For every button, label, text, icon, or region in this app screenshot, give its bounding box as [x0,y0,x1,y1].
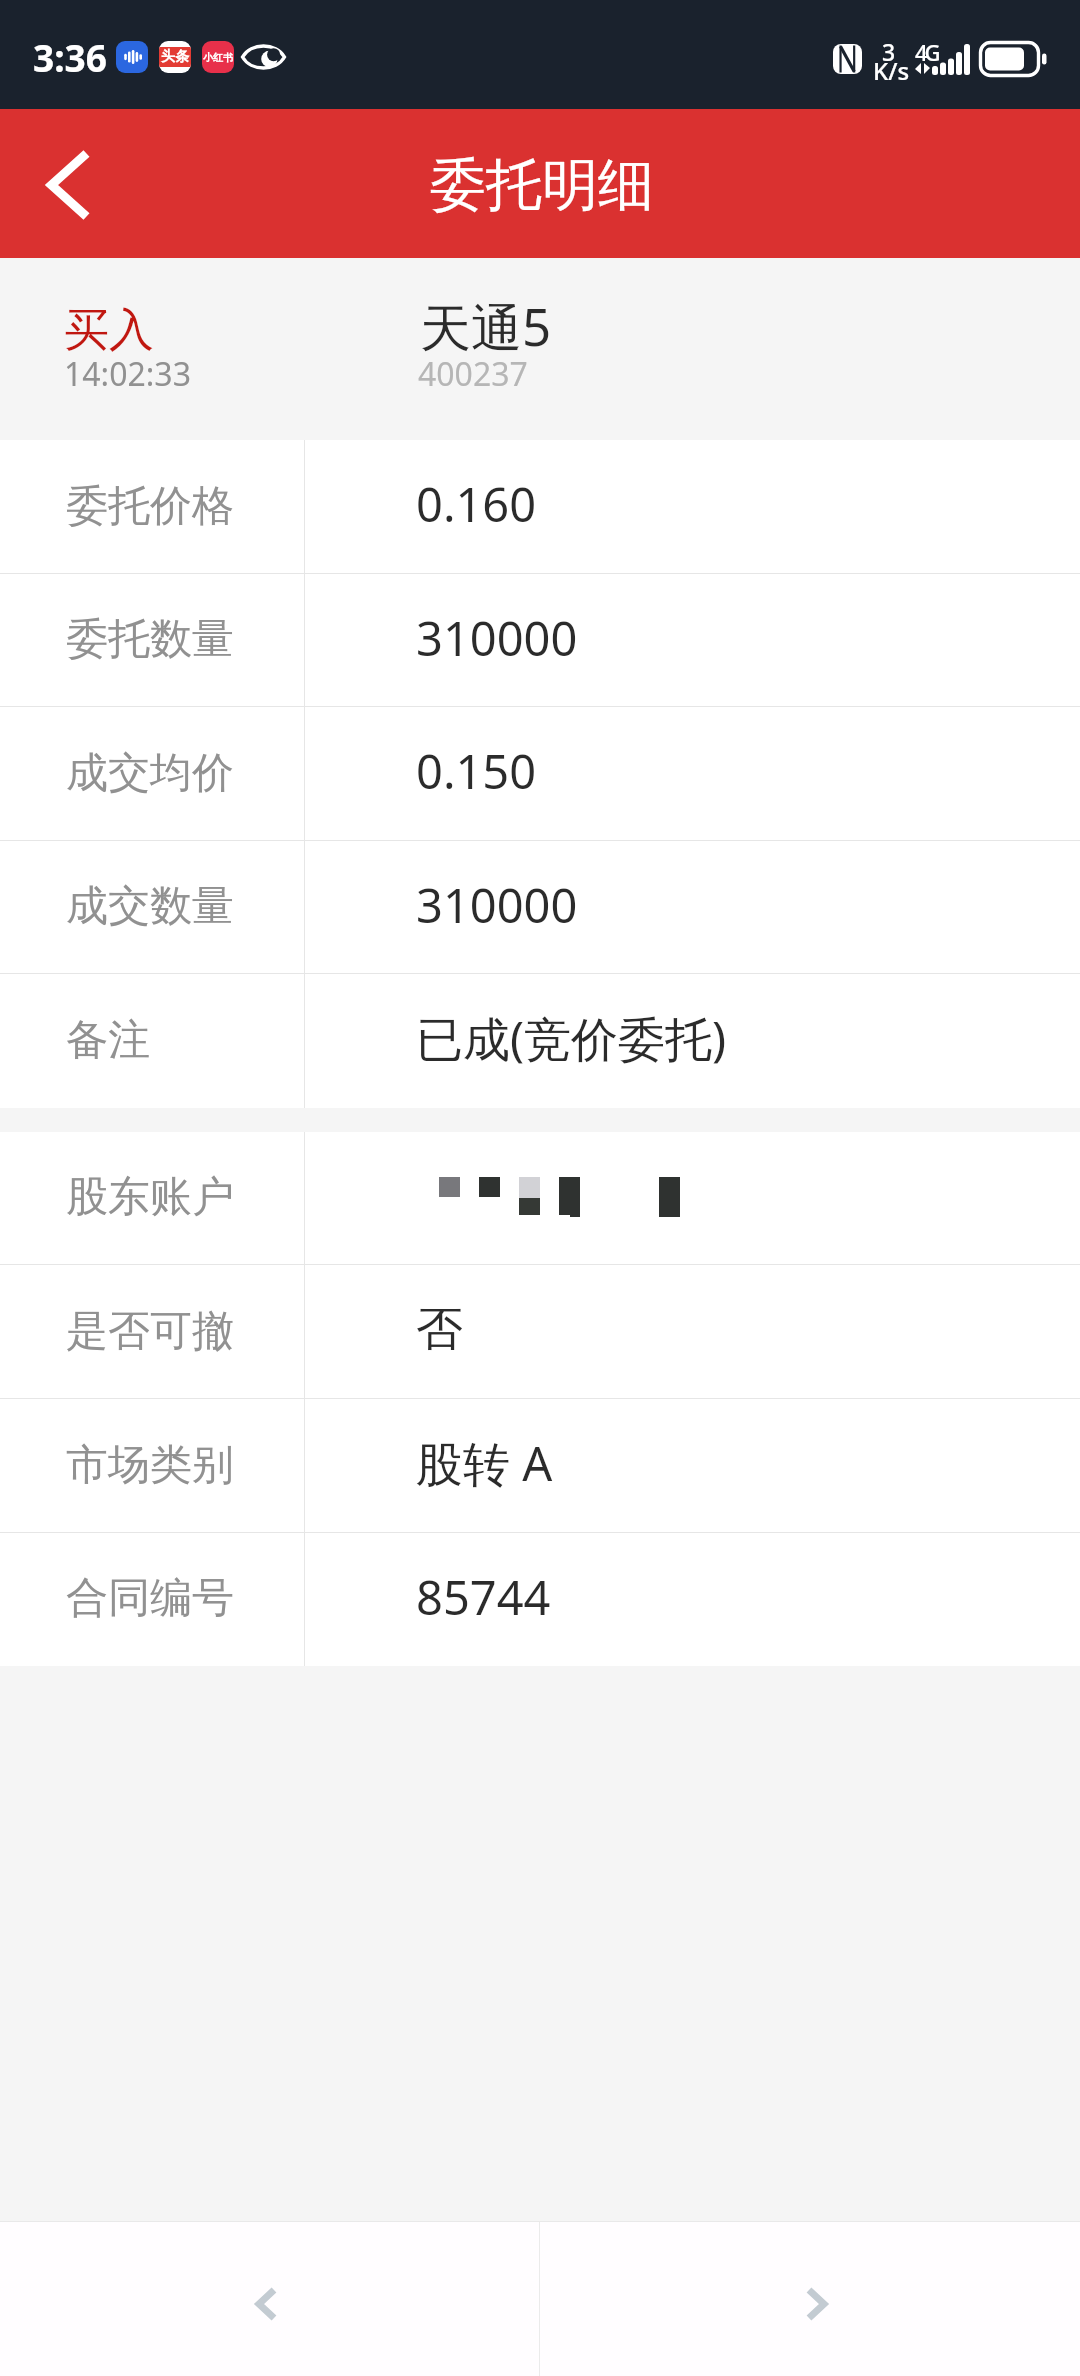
staticText: 85744 [416,1565,551,1629]
staticText: 否 [416,1300,463,1359]
staticText: 400237 [418,352,528,396]
staticText: 成交均价 [66,747,234,800]
staticText: 买入 [64,302,154,359]
button[interactable]: 委托数量 [0,574,1080,707]
staticText: 股转 A [416,1431,553,1495]
staticText: 市场类别 [66,1439,234,1492]
staticText: 是否可撤 [66,1305,234,1358]
button[interactable]: 合同编号 [0,1533,1080,1666]
button[interactable]: 备注 [0,974,1080,1108]
button[interactable]: 市场类别 [0,1399,1080,1533]
staticText: 3 [882,36,896,67]
button[interactable]: Next [540,2222,1080,2376]
staticText: 4G [915,37,938,67]
staticText: 备注 [66,1014,150,1067]
button[interactable]: 成交数量 [0,841,1080,974]
staticText: 已成(竞价委托) [416,1006,727,1070]
staticText: 0.150 [416,739,537,803]
staticText: 310000 [416,606,578,670]
staticText: 委托价格 [66,480,234,533]
staticText: 天通5 [420,291,552,361]
button[interactable]: Previous [0,2222,539,2376]
staticText: 委托数量 [66,613,234,666]
button[interactable]: 委托价格 [0,440,1080,574]
staticText: 股东账户 [66,1171,234,1224]
staticText: 合同编号 [66,1572,234,1625]
staticText: 头条 [161,48,189,66]
staticText: 14:02:33 [64,352,191,396]
staticText: 小红书 [203,51,233,64]
staticText: 成交数量 [66,880,234,933]
staticText: 委托明细 [430,150,654,221]
button[interactable]: 成交均价 [0,707,1080,841]
staticText: 0.160 [416,472,537,536]
staticText: 310000 [416,873,578,937]
button[interactable]: 股东账户 [0,1132,1080,1265]
button[interactable]: Back [0,109,134,258]
button[interactable]: 是否可撤 [0,1265,1080,1399]
staticText: 3:36 [33,32,107,82]
staticText: K/s [873,54,910,87]
